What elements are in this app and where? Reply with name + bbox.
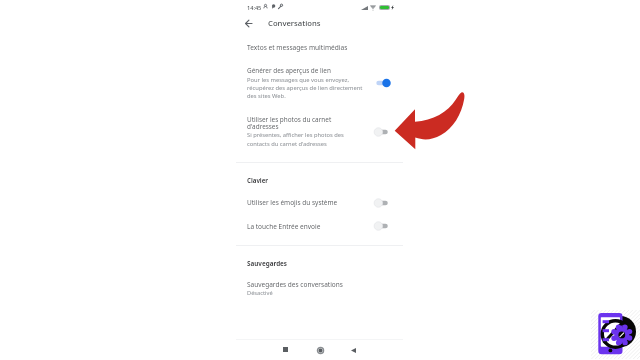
button[interactable]: Toggle off [374, 221, 392, 231]
staticText: Désactivé [247, 289, 273, 297]
button[interactable]: Recent apps [278, 342, 292, 356]
button[interactable]: Back [346, 343, 360, 357]
staticText: Clavier [247, 176, 269, 184]
button[interactable]: Toggle on [374, 78, 392, 88]
button[interactable] [236, 38, 404, 54]
button[interactable]: Home [313, 343, 327, 357]
staticText: Utiliser les émojis du système [247, 198, 338, 207]
button[interactable] [236, 60, 404, 102]
button[interactable] [236, 194, 404, 212]
button[interactable] [236, 278, 404, 300]
staticText: Utiliser les photos du carnet d'adresses [247, 115, 332, 131]
button[interactable]: Toggle off [374, 198, 392, 208]
staticText: Sauvegardes des conversations [247, 280, 343, 289]
staticText: Sauvegardes [247, 259, 288, 268]
staticText: Pour les messages que vous envoyez, récu… [247, 76, 363, 100]
button[interactable]: Back [239, 14, 258, 33]
staticText: La touche Entrée envoie [247, 222, 321, 231]
button[interactable] [236, 107, 404, 152]
button[interactable]: Toggle off [374, 127, 392, 137]
button[interactable] [236, 218, 404, 236]
staticText: Textos et messages multimédias [247, 43, 348, 52]
staticText: Conversations [268, 18, 321, 28]
button[interactable]: App settings logo [591, 310, 640, 359]
staticText: Générer des aperçus de lien [247, 66, 331, 75]
staticText: Si présentes, afficher les photos des co… [247, 131, 344, 148]
staticText: 14:45 [247, 4, 262, 12]
